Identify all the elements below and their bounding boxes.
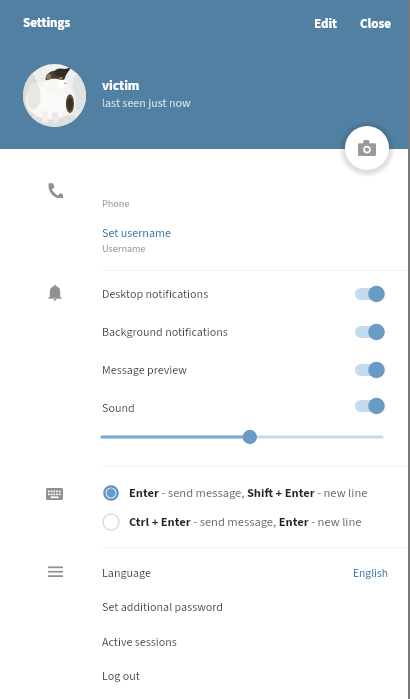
staticText: Settings: [23, 14, 71, 33]
staticText: Language: [102, 565, 151, 582]
button[interactable]: Desktop notifications: [0, 280, 410, 308]
button[interactable]: Profile photo: [23, 64, 86, 127]
staticText: Message preview: [102, 362, 187, 379]
button[interactable]: Close: [353, 9, 398, 40]
staticText: Enter - send message, Shift + Enter - ne…: [129, 484, 368, 502]
button[interactable]: Log out: [0, 661, 410, 689]
staticText: last seen just now: [102, 95, 191, 112]
staticText: Sound: [102, 400, 135, 417]
button[interactable]: Ctrl + Enter - send message, Enter - new…: [0, 507, 410, 533]
staticText: Desktop notifications: [102, 286, 209, 303]
staticText: Close: [360, 15, 391, 34]
button[interactable]: Set username: [102, 225, 171, 242]
staticText: Ctrl + Enter - send message, Enter - new…: [129, 513, 362, 531]
button[interactable]: Enter - send message, Shift + Enter - ne…: [0, 478, 410, 504]
staticText: English: [353, 565, 388, 581]
button[interactable]: Background notifications: [0, 318, 410, 346]
staticText: Background notifications: [102, 324, 228, 341]
staticText: Active sessions: [102, 634, 177, 651]
button[interactable]: Notification volume: [102, 428, 382, 446]
staticText: Edit: [314, 15, 338, 34]
button[interactable]: Change profile photo: [345, 126, 389, 170]
button[interactable]: Message preview: [0, 356, 410, 384]
button[interactable]: Language: [0, 558, 410, 586]
button[interactable]: Edit: [307, 9, 345, 40]
button[interactable]: Set additional password: [0, 592, 410, 620]
button[interactable]: Sound: [0, 394, 410, 422]
staticText: Set username: [102, 225, 171, 242]
staticText: Phone: [102, 197, 130, 212]
staticText: Set additional password: [102, 599, 223, 616]
staticText: Username: [102, 242, 146, 257]
staticText: victim: [102, 76, 140, 95]
button[interactable]: Active sessions: [0, 627, 410, 655]
staticText: Log out: [102, 668, 140, 685]
